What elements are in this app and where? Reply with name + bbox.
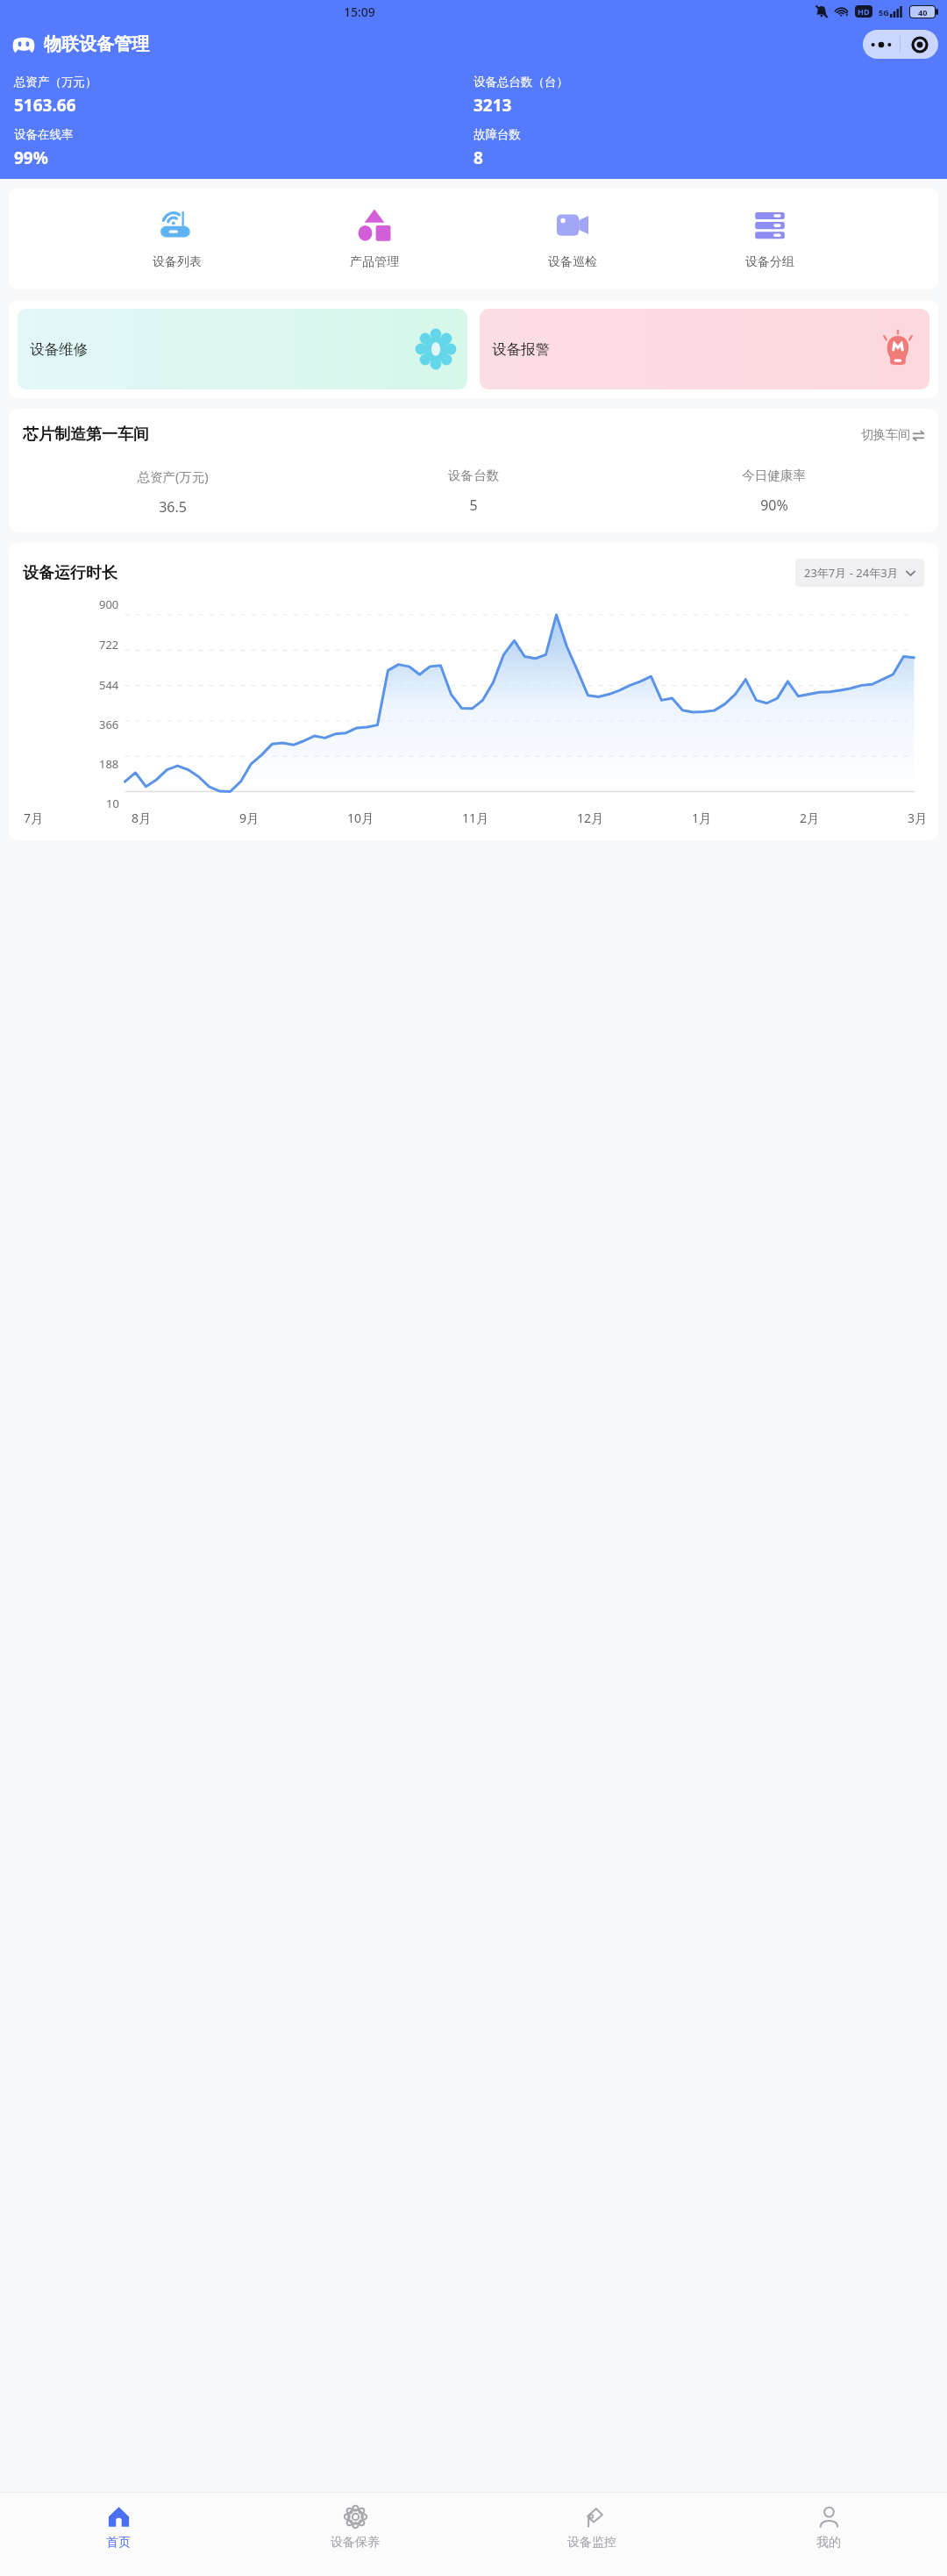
- staticText: 设备运行时长: [23, 563, 117, 583]
- staticText: 设备分组: [745, 254, 794, 270]
- staticText: 366: [99, 717, 119, 732]
- staticText: 设备台数: [448, 467, 499, 483]
- button[interactable]: 我的: [710, 2493, 947, 2576]
- staticText: 故障台数: [473, 127, 521, 142]
- staticText: 40: [918, 7, 928, 18]
- staticText: 5G: [879, 7, 889, 18]
- button[interactable]: 产品管理: [345, 207, 404, 270]
- staticText: 8月: [132, 810, 152, 826]
- staticText: 722: [99, 637, 119, 653]
- staticText: 设备监控: [567, 2535, 616, 2551]
- button[interactable]: 设备报警: [480, 309, 929, 389]
- button[interactable]: 切换车间: [861, 427, 924, 443]
- staticText: 7月: [24, 810, 44, 826]
- staticText: 3213: [473, 94, 512, 117]
- button[interactable]: 23年7月 - 24年3月: [795, 559, 924, 587]
- button[interactable]: More and close: [863, 30, 938, 59]
- staticText: 我的: [816, 2535, 841, 2551]
- staticText: 设备保养: [331, 2535, 380, 2551]
- button[interactable]: 设备巡检: [543, 207, 602, 270]
- button[interactable]: 设备维修: [18, 309, 467, 389]
- staticText: 芯片制造第一车间: [23, 425, 149, 445]
- staticText: 23年7月 - 24年3月: [804, 565, 899, 581]
- staticText: 切换车间: [861, 427, 910, 443]
- staticText: 188: [99, 756, 119, 772]
- button[interactable]: 设备监控: [473, 2493, 710, 2576]
- staticText: 3月: [908, 810, 928, 826]
- button[interactable]: 首页: [0, 2493, 237, 2576]
- staticText: 5163.66: [14, 94, 76, 117]
- staticText: 设备列表: [153, 254, 202, 270]
- staticText: 物联设备管理: [44, 33, 149, 55]
- staticText: 900: [99, 596, 119, 612]
- staticText: 首页: [106, 2535, 131, 2551]
- staticText: 总资产(万元): [137, 467, 209, 485]
- staticText: 90%: [760, 496, 788, 515]
- staticText: 设备报警: [492, 340, 550, 359]
- staticText: 总资产（万元）: [14, 75, 97, 89]
- staticText: 36.5: [159, 497, 187, 517]
- staticText: 1月: [692, 810, 712, 826]
- staticText: 5: [469, 496, 478, 515]
- staticText: 设备巡检: [548, 254, 597, 270]
- staticText: 544: [99, 677, 119, 693]
- staticText: 10月: [347, 810, 374, 826]
- button[interactable]: 设备保养: [237, 2493, 473, 2576]
- button[interactable]: 设备分组: [740, 207, 800, 270]
- staticText: 99%: [14, 146, 48, 169]
- staticText: 10: [106, 796, 119, 811]
- staticText: 9月: [239, 810, 260, 826]
- staticText: 设备维修: [30, 340, 88, 359]
- staticText: 今日健康率: [742, 467, 806, 483]
- staticText: 产品管理: [350, 254, 399, 270]
- staticText: 设备总台数（台）: [473, 75, 568, 89]
- staticText: HD: [858, 6, 870, 17]
- staticText: 12月: [577, 810, 604, 826]
- staticText: 15:09: [344, 4, 375, 20]
- staticText: 2月: [800, 810, 820, 826]
- staticText: 8: [473, 146, 483, 169]
- staticText: 11月: [462, 810, 489, 826]
- staticText: 设备在线率: [14, 127, 74, 142]
- button[interactable]: 设备列表: [147, 207, 207, 270]
